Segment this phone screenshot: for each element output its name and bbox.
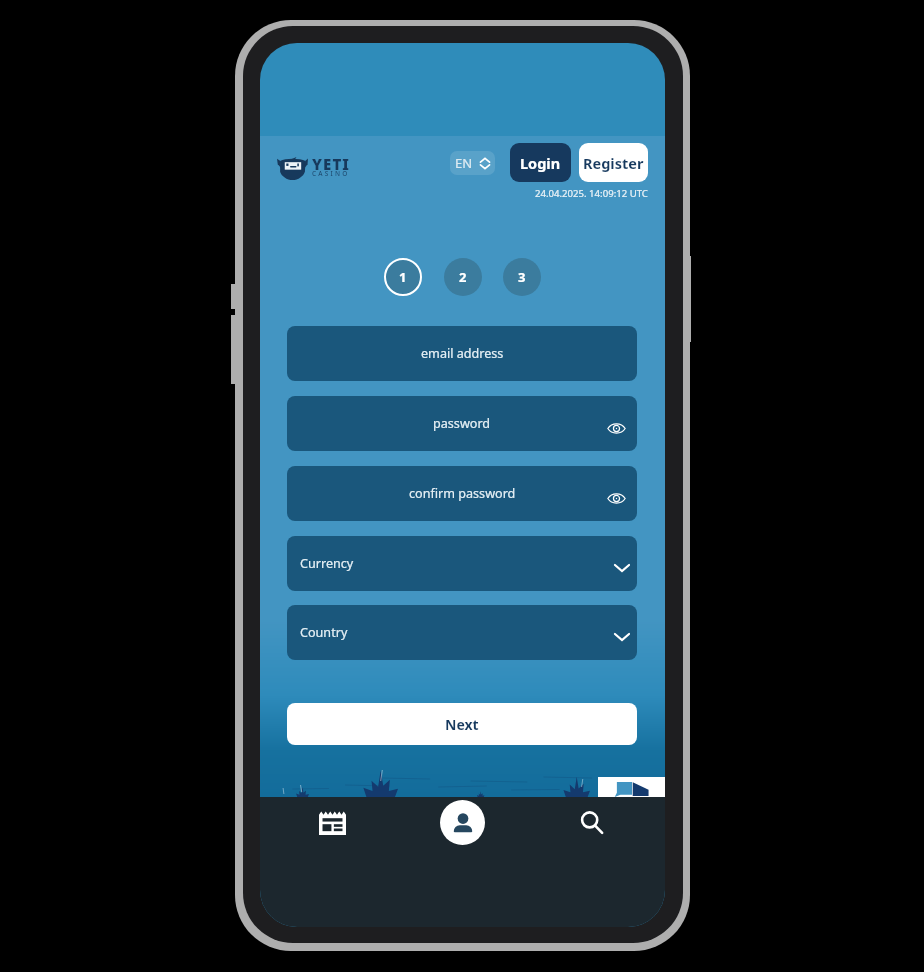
staticText: Country: [300, 624, 348, 641]
button[interactable]: Live chat: [598, 777, 665, 797]
button[interactable]: 2: [444, 258, 482, 296]
button[interactable]: EN: [450, 151, 495, 175]
staticText: 1: [399, 268, 407, 286]
button[interactable]: Currency: [287, 536, 637, 591]
staticText: Currency: [300, 555, 354, 572]
staticText: EN: [455, 154, 473, 172]
staticText: Next: [445, 715, 479, 734]
staticText: confirm password: [409, 485, 516, 502]
staticText: 2: [459, 268, 467, 286]
staticText: 24.04.2025. 14:09:12 UTC: [535, 187, 648, 200]
button[interactable]: email address: [287, 326, 637, 381]
button[interactable]: Search: [570, 801, 614, 845]
button[interactable]: Account: [440, 800, 485, 845]
button[interactable]: Register: [579, 143, 648, 182]
staticText: password: [433, 415, 491, 432]
staticText: Login: [520, 153, 561, 173]
button[interactable]: password: [287, 396, 637, 451]
staticText: email address: [421, 345, 504, 362]
button[interactable]: 3: [503, 258, 541, 296]
staticText: CASINO: [312, 169, 350, 178]
button[interactable]: Country: [287, 605, 637, 660]
button[interactable]: Login: [510, 143, 571, 182]
button[interactable]: News: [310, 801, 354, 845]
staticText: YETI: [312, 154, 351, 174]
button[interactable]: confirm password: [287, 466, 637, 521]
staticText: Register: [583, 153, 644, 173]
button[interactable]: Next: [287, 703, 637, 745]
staticText: 3: [518, 268, 526, 286]
button[interactable]: 1: [386, 260, 420, 294]
